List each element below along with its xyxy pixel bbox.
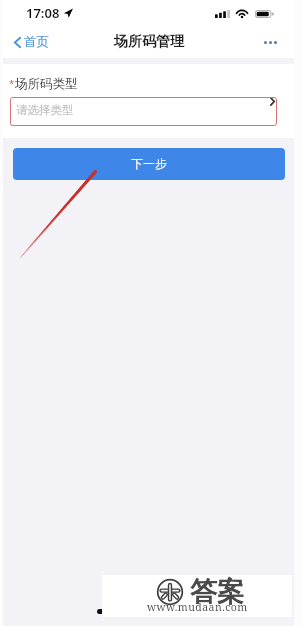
button[interactable]: More options	[252, 31, 301, 54]
staticText: 首页	[24, 34, 49, 50]
staticText: www.mudaan.com	[147, 600, 248, 614]
staticText: 场所码类型	[15, 76, 78, 92]
button[interactable]: 首页	[0, 29, 59, 55]
staticText: 请选择类型	[16, 103, 74, 117]
staticText: 下一步	[131, 157, 167, 172]
staticText: *	[9, 77, 15, 90]
staticText: 答案	[190, 575, 244, 609]
button[interactable]: 请选择类型	[10, 97, 277, 126]
staticText: 场所码管理	[114, 33, 184, 51]
button[interactable]: 下一步	[13, 148, 285, 180]
staticText: 17:08	[26, 4, 60, 22]
